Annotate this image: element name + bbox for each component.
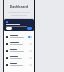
button[interactable]: Toggle xyxy=(4,40,34,47)
staticText: Dashboard xyxy=(4,4,34,9)
button[interactable] xyxy=(6,27,12,30)
button[interactable]: Toggle xyxy=(4,54,34,61)
button[interactable] xyxy=(4,19,34,31)
other: Toggle xyxy=(28,43,32,45)
button[interactable]: Toggle xyxy=(4,47,34,54)
staticText: notification settings from one place xyxy=(4,17,34,19)
other: Toggle xyxy=(28,50,32,52)
button[interactable]: Toggle xyxy=(4,33,34,40)
button[interactable] xyxy=(27,27,32,30)
other: Toggle xyxy=(28,64,32,66)
button[interactable]: Toggle xyxy=(4,61,34,68)
other: Toggle xyxy=(28,57,32,59)
staticText: Manage your account preferences and xyxy=(4,11,34,17)
other: Toggle xyxy=(28,36,32,38)
